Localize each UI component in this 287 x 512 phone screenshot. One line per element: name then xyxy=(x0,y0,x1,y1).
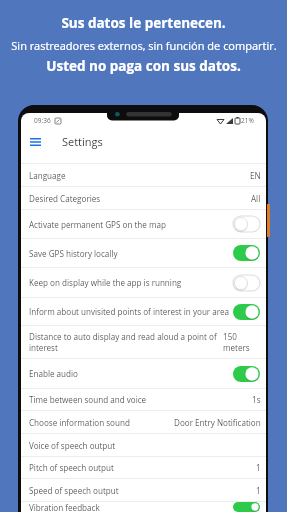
staticText: EN xyxy=(250,170,261,181)
button[interactable]: Speed of speech output xyxy=(21,479,266,501)
button[interactable]: Save GPS history locally xyxy=(21,239,266,267)
staticText: Distance to auto display and read aloud … xyxy=(29,331,219,353)
staticText: 09:36 xyxy=(34,116,51,125)
staticText: Settings xyxy=(62,134,103,149)
staticText: 1s xyxy=(252,394,261,405)
staticText: Pitch of speech output xyxy=(29,462,241,473)
button[interactable]: Enable audio xyxy=(21,359,266,388)
staticText: Desired Categories xyxy=(29,193,241,204)
staticText: Usted no paga con sus datos. xyxy=(46,57,241,75)
button[interactable]: Time between sound and voice xyxy=(21,389,266,410)
button[interactable]: Toggle on xyxy=(233,245,260,261)
staticText: Time between sound and voice xyxy=(29,394,241,405)
staticText: Language xyxy=(29,170,241,181)
button[interactable]: Inform about unvisited points of interes… xyxy=(21,298,266,325)
button[interactable]: Distance to auto display and read aloud … xyxy=(21,326,266,358)
staticText: All xyxy=(251,193,261,204)
staticText: Enable audio xyxy=(29,368,241,379)
button[interactable]: Activate permanent GPS on the map xyxy=(21,210,266,238)
staticText: 21% xyxy=(241,116,254,125)
staticText: Door Entry Notification xyxy=(174,417,261,428)
button[interactable]: Toggle on xyxy=(233,366,260,382)
staticText: 1 xyxy=(256,485,261,496)
staticText: Activate permanent GPS on the map xyxy=(29,219,241,230)
staticText: 1 xyxy=(256,462,261,473)
button[interactable]: Keep on display while the app is running xyxy=(21,268,266,297)
button[interactable]: Choose information sound xyxy=(21,411,266,433)
button[interactable]: Toggle off xyxy=(233,275,260,291)
button[interactable]: Desired Categories xyxy=(21,187,266,209)
staticText: Speed of speech output xyxy=(29,485,241,496)
staticText: Choose information sound xyxy=(29,417,241,428)
button[interactable]: Toggle on xyxy=(233,304,260,320)
button[interactable]: Open navigation menu xyxy=(25,131,46,152)
button[interactable]: Pitch of speech output xyxy=(21,457,266,478)
button[interactable]: Toggle off xyxy=(233,216,260,232)
button[interactable]: Toggle on xyxy=(233,502,260,512)
staticText: Sin rastreadores externos, sin función d… xyxy=(11,38,277,53)
staticText: Sus datos le pertenecen. xyxy=(61,14,226,32)
button[interactable]: Vibration feedback xyxy=(21,502,266,512)
button[interactable]: Language xyxy=(21,164,266,186)
staticText: Keep on display while the app is running xyxy=(29,277,241,288)
staticText: Vibration feedback xyxy=(29,502,241,512)
staticText: Voice of speech output xyxy=(29,440,241,451)
staticText: Inform about unvisited points of interes… xyxy=(29,306,241,317)
button[interactable]: Voice of speech output xyxy=(21,434,266,456)
staticText: 150 meters xyxy=(223,331,250,353)
staticText: Save GPS history locally xyxy=(29,248,241,259)
